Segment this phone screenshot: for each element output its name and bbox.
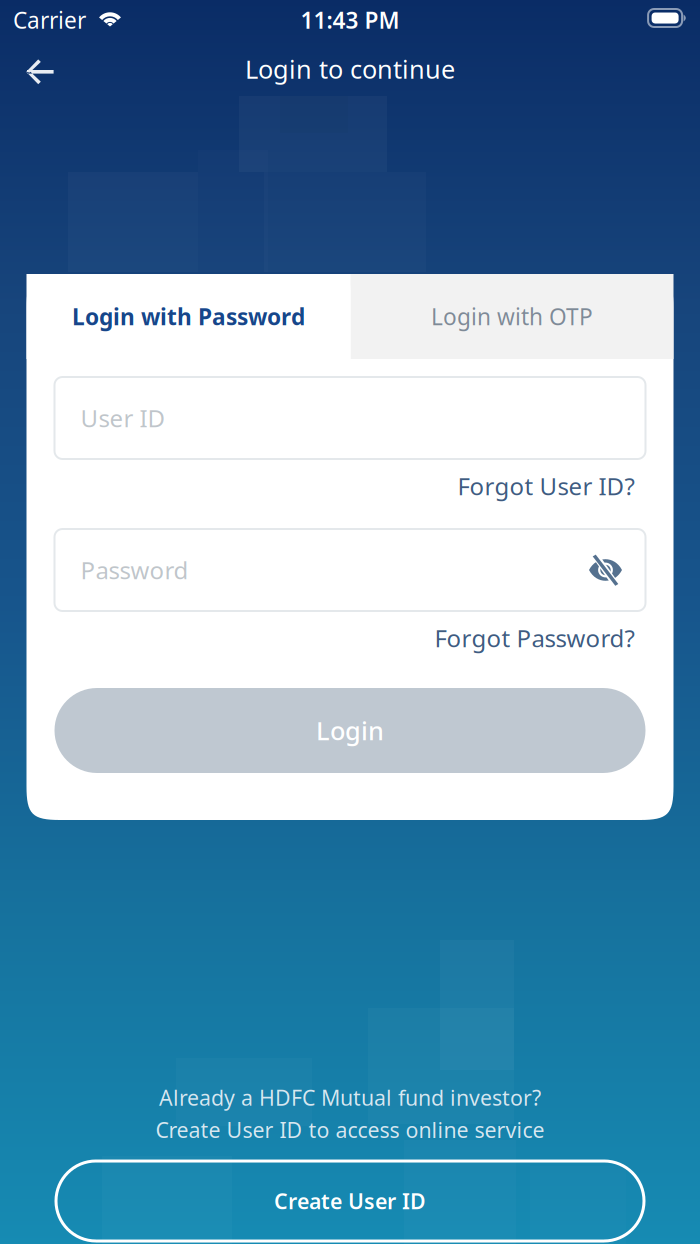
staticText: Login to continue <box>245 52 455 86</box>
button[interactable]: Login <box>54 688 645 773</box>
staticText: User ID <box>80 402 165 434</box>
staticText: Forgot Password? <box>434 622 634 654</box>
staticText: Carrier <box>13 5 86 35</box>
staticText: Login <box>316 714 384 747</box>
staticText: Already a HDFC Mutual fund investor? <box>159 1083 541 1112</box>
button[interactable]: Create User ID <box>56 1161 644 1241</box>
button[interactable]: Login with Password <box>26 274 350 359</box>
staticText: Forgot User ID? <box>457 470 634 502</box>
staticText: Login with Password <box>72 301 305 331</box>
button[interactable]: Login with OTP <box>350 274 673 359</box>
staticText: Password <box>80 554 188 586</box>
staticText: Login with OTP <box>431 301 593 331</box>
staticText: Create User ID <box>274 1187 426 1215</box>
button[interactable]: Forgot Password? <box>434 620 645 672</box>
staticText: 11:43 PM <box>300 5 399 35</box>
button[interactable]: Back <box>12 40 68 98</box>
staticText: Create User ID to access online service <box>155 1116 544 1144</box>
button[interactable]: Show password <box>585 552 625 588</box>
button[interactable]: Forgot User ID? <box>457 468 645 520</box>
